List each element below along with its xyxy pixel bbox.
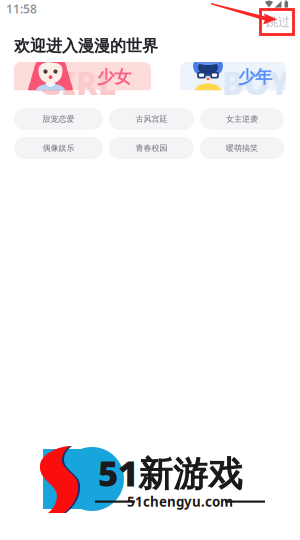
staticText: 少年 — [238, 66, 272, 88]
button[interactable]: BOY — [180, 62, 286, 95]
staticText: GIRL — [38, 61, 117, 104]
staticText: BOY — [222, 61, 290, 104]
staticText: 青春校园 — [135, 143, 167, 153]
staticText: 暖萌搞笑 — [226, 143, 258, 153]
button[interactable]: 古风宫廷 — [109, 108, 194, 130]
staticText: 甜宠恋爱 — [42, 114, 74, 124]
staticText: 欢迎进入漫漫的世界 — [14, 36, 158, 56]
button[interactable]: 青春校园 — [109, 137, 194, 159]
button[interactable]: 甜宠恋爱 — [14, 108, 103, 130]
staticText: 跳过 — [266, 15, 290, 29]
button[interactable]: 偶像娱乐 — [14, 137, 103, 159]
button[interactable]: 女主逆袭 — [200, 108, 284, 130]
staticText: 偶像娱乐 — [42, 143, 74, 153]
staticText: 11:58 — [6, 1, 37, 17]
staticText: 古风宫廷 — [135, 114, 167, 124]
staticText: 51新游戏 — [98, 450, 243, 496]
staticText: 少女 — [97, 66, 131, 88]
staticText: 女主逆袭 — [226, 114, 258, 124]
button[interactable]: 暖萌搞笑 — [200, 137, 284, 159]
staticText: 51chengyu.com — [127, 493, 233, 510]
button[interactable]: GIRL — [14, 62, 151, 95]
button[interactable]: 跳过 — [261, 13, 295, 31]
